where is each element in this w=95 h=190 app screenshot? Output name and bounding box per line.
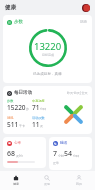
staticText: 睡眠 xyxy=(60,141,68,146)
staticText: 中高强度 xyxy=(32,99,45,103)
staticText: 千卡 xyxy=(19,124,25,128)
staticText: 昨天·前天|全天 xyxy=(67,91,88,95)
button[interactable]: 每日活动 xyxy=(3,86,92,134)
button[interactable]: 心率 xyxy=(3,137,46,168)
staticText: 小时 xyxy=(58,154,64,158)
staticText: 15220 xyxy=(7,103,26,112)
button[interactable]: 我的 xyxy=(63,171,95,190)
staticText: 13220 xyxy=(34,40,62,53)
staticText: 消耗 xyxy=(7,116,14,120)
other: Activity summary xyxy=(58,99,88,129)
staticText: 健康 xyxy=(5,4,16,11)
staticText: 已达成目标，真棒 xyxy=(33,72,62,77)
staticText: 健康 xyxy=(13,182,19,186)
staticText: 步数 xyxy=(7,99,14,103)
staticText: 正常 xyxy=(53,161,59,165)
staticText: 步 xyxy=(26,107,29,111)
staticText: 分钟 xyxy=(40,107,46,111)
staticText: 54 xyxy=(64,149,73,159)
staticText: 次/分 xyxy=(16,154,24,158)
button[interactable]: 健康 xyxy=(0,171,31,190)
staticText: 71 xyxy=(32,103,40,112)
staticText: 我的 xyxy=(76,182,82,186)
staticText: 心率 xyxy=(14,141,22,146)
staticText: 次 xyxy=(40,124,43,128)
staticText: 步数 xyxy=(14,19,23,25)
staticText: 68 xyxy=(7,149,16,159)
staticText: 发现 xyxy=(44,182,50,186)
staticText: 11 xyxy=(32,120,40,129)
staticText: 511 xyxy=(7,120,19,129)
button[interactable]: Profile xyxy=(82,4,90,12)
staticText: 历史 xyxy=(80,20,88,25)
staticText: 目标完成 xyxy=(42,53,54,57)
button[interactable]: 睡眠 xyxy=(49,137,92,170)
staticText: 分钟 xyxy=(73,154,79,158)
staticText: 每日活动 xyxy=(14,90,32,96)
button[interactable]: 步数 xyxy=(3,15,92,83)
staticText: 活动次数 xyxy=(32,116,45,120)
button[interactable]: 发现 xyxy=(31,171,63,190)
staticText: 7 xyxy=(53,149,58,159)
